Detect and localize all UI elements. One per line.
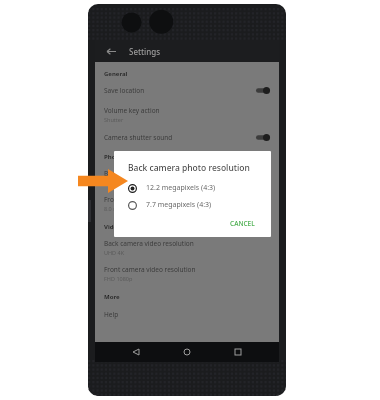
staticText: UHD 4K [104, 249, 125, 256]
button[interactable]: Back [103, 43, 119, 59]
staticText: Front camera video resolution [104, 265, 196, 274]
button[interactable]: Back camera photo resolution [104, 169, 270, 186]
staticText: Volume key action [104, 106, 160, 115]
staticText: CANCEL [230, 219, 255, 228]
button[interactable]: Back [126, 342, 146, 362]
staticText: 12.2 megapixels (4:3) [104, 179, 159, 186]
staticText: Camera shutter sound [104, 133, 256, 142]
button[interactable]: Recents [228, 342, 248, 362]
staticText: 7.7 megapixels (4:3) [146, 200, 212, 210]
staticText: Save location [104, 86, 256, 95]
button[interactable]: Home [177, 342, 197, 362]
button[interactable]: Front camera video resolution [104, 265, 270, 282]
button[interactable]: 7.7 megapixels (4:3) [114, 200, 271, 210]
button[interactable]: Volume key action [104, 106, 270, 123]
staticText: More [104, 293, 120, 301]
staticText: FHD 1080p [104, 275, 133, 282]
staticText: General [104, 70, 128, 78]
other: Pointer arrow [78, 168, 128, 194]
button[interactable]: Camera shutter sound [104, 133, 270, 142]
staticText: Photo [104, 153, 122, 161]
button[interactable]: Help [104, 310, 119, 319]
staticText: Back camera photo resolution [104, 169, 196, 178]
staticText: Shutter [104, 116, 124, 123]
button[interactable]: CANCEL [226, 217, 259, 230]
staticText: 12.2 megapixels (4:3) [146, 183, 216, 193]
button[interactable]: Back camera video resolution [104, 239, 270, 256]
button[interactable]: Front camera photo resolution [104, 195, 270, 212]
staticText: Back camera video resolution [104, 239, 194, 248]
button[interactable]: 12.2 megapixels (4:3) [114, 183, 271, 193]
staticText: Front camera photo resolution [104, 195, 198, 204]
staticText: Settings [129, 46, 161, 57]
staticText: Video [104, 223, 121, 231]
button[interactable]: Save location [104, 86, 270, 95]
staticText: 8.0 megapixels (4:3) [104, 205, 156, 212]
staticText: Back camera photo resolution [128, 162, 250, 174]
